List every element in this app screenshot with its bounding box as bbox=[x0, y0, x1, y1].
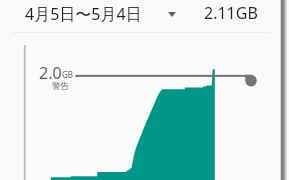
staticText: 2.0 bbox=[39, 62, 62, 84]
staticText: 2.11GB bbox=[204, 2, 258, 24]
button[interactable]: 4月5日〜5月4日 bbox=[18, 1, 186, 29]
staticText: GB bbox=[62, 69, 74, 80]
staticText: 4月5日〜5月4日 bbox=[25, 3, 142, 25]
staticText: 警告 bbox=[52, 81, 69, 92]
